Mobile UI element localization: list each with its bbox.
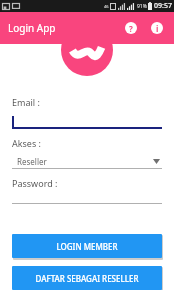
staticText: Login App bbox=[8, 21, 56, 35]
button[interactable]: Reseller bbox=[12, 153, 162, 169]
staticText: 91% bbox=[137, 3, 147, 10]
staticText: DAFTAR SEBAGAI RESELLER bbox=[35, 273, 139, 284]
button[interactable]: DAFTAR SEBAGAI RESELLER bbox=[12, 266, 162, 290]
button[interactable]: Help bbox=[121, 18, 141, 38]
staticText: 46 bbox=[104, 4, 109, 9]
button[interactable]: LOGIN MEMBER bbox=[12, 234, 162, 258]
button[interactable] bbox=[12, 114, 162, 129]
button[interactable] bbox=[12, 203, 162, 205]
staticText: Email : bbox=[12, 96, 40, 108]
staticText: Password : bbox=[12, 177, 58, 189]
staticText: LOGIN MEMBER bbox=[56, 241, 118, 252]
staticText: Reseller bbox=[17, 156, 47, 167]
staticText: Akses : bbox=[12, 137, 42, 149]
button[interactable]: Info bbox=[147, 18, 167, 38]
staticText: ? bbox=[129, 23, 133, 34]
staticText: i bbox=[156, 23, 159, 34]
staticText: 09:57 bbox=[154, 1, 172, 11]
